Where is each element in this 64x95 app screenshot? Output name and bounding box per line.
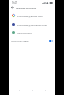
staticText: Manage accounts xyxy=(16,6,37,9)
button[interactable]: Auto-sync data xyxy=(9,37,55,44)
button[interactable]: Nav xyxy=(42,87,48,93)
staticText: Add account xyxy=(17,31,32,34)
staticText: 9:41 xyxy=(12,1,18,5)
button[interactable]: Nav xyxy=(16,87,22,93)
button[interactable]: a.morgan@gmail.com xyxy=(9,11,55,20)
staticText: a.morgan@company.com xyxy=(17,23,48,26)
button[interactable]: a.morgan@company.com xyxy=(9,20,55,29)
button[interactable]: Add account xyxy=(9,28,55,37)
button[interactable]: Back xyxy=(9,4,16,11)
staticText: a.morgan@gmail.com xyxy=(17,14,43,17)
staticText: Auto-sync data xyxy=(11,39,29,42)
button[interactable]: Nav xyxy=(29,87,35,93)
